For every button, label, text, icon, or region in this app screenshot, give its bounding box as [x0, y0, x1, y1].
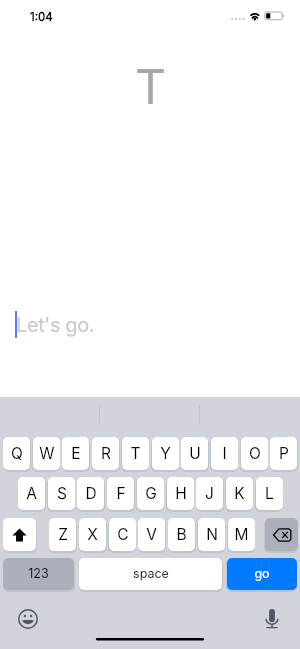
- staticText: W: [39, 444, 55, 463]
- staticText: space: [133, 566, 169, 581]
- button[interactable]: T: [122, 437, 149, 470]
- staticText: B: [176, 525, 187, 544]
- staticText: K: [234, 484, 245, 503]
- staticText: T: [130, 444, 141, 463]
- button[interactable]: J: [196, 477, 223, 510]
- staticText: S: [57, 484, 67, 503]
- staticText: X: [87, 525, 98, 544]
- button[interactable]: Dictate: [258, 605, 286, 633]
- button[interactable]: X: [79, 518, 106, 551]
- staticText: M: [234, 525, 249, 544]
- button[interactable]: 123: [3, 558, 74, 590]
- staticText: J: [205, 484, 214, 503]
- button[interactable]: C: [109, 518, 136, 551]
- button[interactable]: F: [107, 477, 134, 510]
- button[interactable]: Emoji: [14, 605, 42, 633]
- staticText: A: [26, 484, 37, 503]
- button[interactable]: space: [79, 558, 222, 590]
- staticText: H: [175, 484, 187, 503]
- staticText: N: [206, 525, 218, 544]
- button[interactable]: S: [48, 477, 75, 510]
- button[interactable]: Shift: [3, 518, 36, 551]
- button[interactable]: K: [226, 477, 253, 510]
- button[interactable]: A: [18, 477, 45, 510]
- staticText: P: [279, 444, 289, 463]
- button[interactable]: R: [92, 437, 119, 470]
- button[interactable]: I: [211, 437, 238, 470]
- staticText: I: [222, 444, 227, 463]
- staticText: O: [249, 444, 261, 463]
- staticText: go: [254, 566, 270, 581]
- staticText: V: [146, 525, 157, 544]
- staticText: F: [116, 484, 126, 503]
- staticText: 1:04: [30, 10, 53, 24]
- button[interactable]: G: [137, 477, 164, 510]
- staticText: G: [145, 484, 157, 503]
- staticText: L: [265, 484, 274, 503]
- staticText: C: [117, 525, 129, 544]
- staticText: Z: [58, 525, 68, 544]
- staticText: Y: [160, 444, 171, 463]
- button[interactable]: V: [138, 518, 165, 551]
- button[interactable]: M: [228, 518, 255, 551]
- button[interactable]: N: [198, 518, 225, 551]
- staticText: T: [135, 57, 166, 115]
- button[interactable]: go: [227, 558, 297, 590]
- staticText: D: [85, 484, 97, 503]
- button[interactable]: Y: [152, 437, 179, 470]
- button[interactable]: W: [33, 437, 60, 470]
- button[interactable]: D: [77, 477, 104, 510]
- button[interactable]: P: [270, 437, 297, 470]
- button[interactable]: E: [62, 437, 89, 470]
- button[interactable]: Backspace: [265, 518, 298, 551]
- button[interactable]: O: [241, 437, 268, 470]
- button[interactable]: Z: [49, 518, 76, 551]
- staticText: Let's go.: [16, 313, 95, 337]
- staticText: U: [189, 444, 201, 463]
- button[interactable]: H: [167, 477, 194, 510]
- button[interactable]: L: [256, 477, 283, 510]
- button[interactable]: Q: [3, 437, 30, 470]
- button[interactable]: B: [168, 518, 195, 551]
- staticText: R: [101, 444, 111, 463]
- staticText: E: [71, 444, 81, 463]
- button[interactable]: U: [181, 437, 208, 470]
- staticText: 123: [28, 566, 49, 581]
- staticText: Q: [11, 444, 23, 463]
